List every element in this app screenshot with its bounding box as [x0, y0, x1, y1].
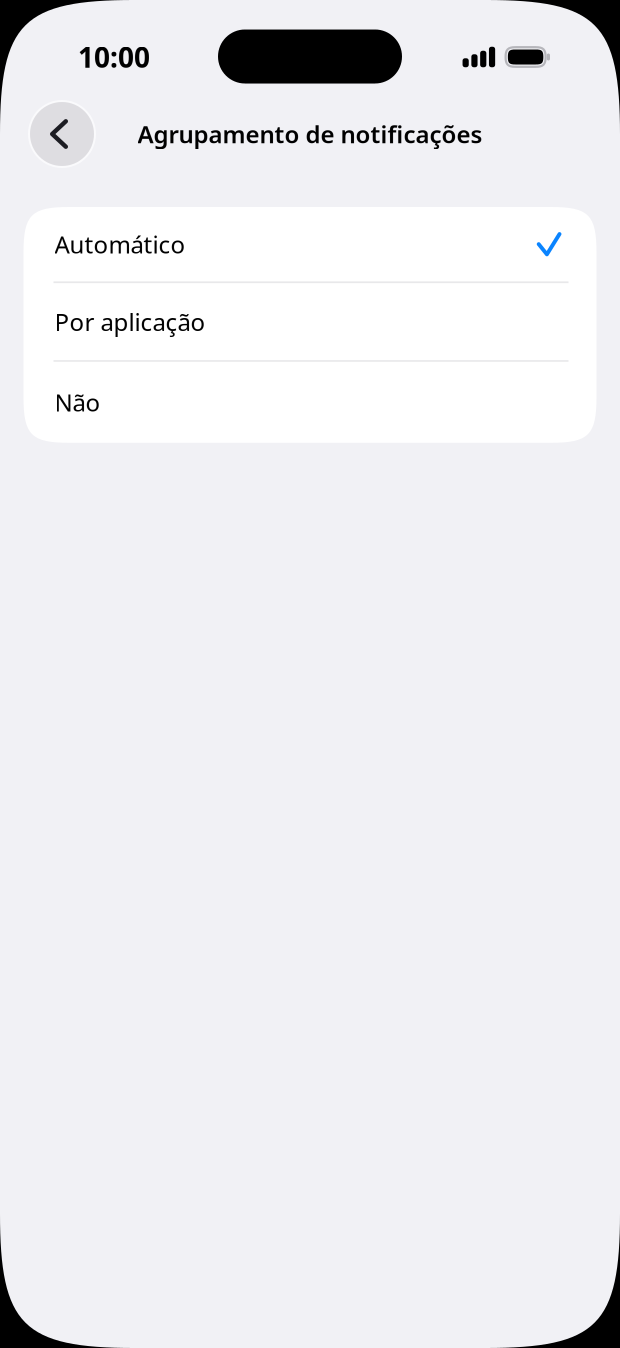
staticText: Agrupamento de notificações	[137, 118, 482, 150]
staticText: Por aplicação	[54, 306, 205, 338]
button[interactable]: Automático	[23, 207, 596, 281]
button[interactable]: Por aplicação	[23, 283, 596, 360]
staticText: Não	[54, 386, 100, 418]
button[interactable]: Não	[23, 362, 596, 443]
button[interactable]: Back	[28, 100, 96, 168]
staticText: Automático	[54, 228, 185, 260]
staticText: 10:00	[78, 38, 150, 76]
